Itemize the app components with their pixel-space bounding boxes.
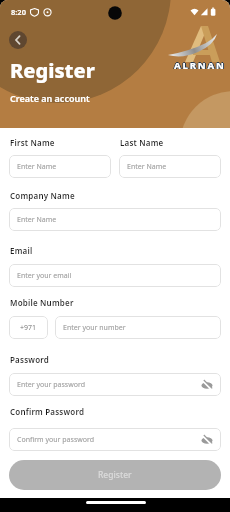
staticText: +971 <box>20 323 37 333</box>
staticText: Enter your password <box>17 380 85 390</box>
staticText: Register <box>10 57 95 84</box>
staticText: Email <box>10 245 33 256</box>
staticText: ALRNAN <box>174 58 226 71</box>
staticText: ALRNAN <box>174 59 226 72</box>
staticText: Company Name <box>10 190 75 201</box>
staticText: Mobile Number <box>10 297 74 308</box>
button[interactable] <box>9 31 27 49</box>
button[interactable]: Enter your password <box>9 373 221 396</box>
staticText: Enter Name <box>127 162 167 172</box>
button[interactable]: Register <box>9 460 221 490</box>
staticText: Create an account <box>10 92 90 104</box>
staticText: Confirm Password <box>10 406 85 417</box>
staticText: Last Name <box>120 137 164 148</box>
staticText: ALRNAN <box>173 59 225 72</box>
staticText: ALRNAN <box>175 59 227 72</box>
staticText: ALRNAN <box>175 59 227 72</box>
button[interactable]: Enter your number <box>55 316 221 339</box>
button[interactable]: Enter Name <box>9 208 221 231</box>
staticText: Enter your email <box>17 271 72 281</box>
staticText: Enter Name <box>17 215 57 225</box>
button[interactable]: Enter Name <box>119 155 221 178</box>
button[interactable]: Enter Name <box>9 155 111 178</box>
staticText: Register <box>98 469 132 481</box>
staticText: Enter your number <box>63 323 126 333</box>
staticText: Enter Name <box>17 162 57 172</box>
button[interactable]: Confirm your password <box>9 428 221 451</box>
staticText: ALRNAN <box>174 59 226 72</box>
staticText: First Name <box>10 137 55 148</box>
button[interactable]: Enter your email <box>9 264 221 287</box>
staticText: Password <box>10 354 49 365</box>
button[interactable]: +971 <box>9 316 48 339</box>
staticText: Confirm your password <box>17 435 95 445</box>
staticText: 8:20 <box>11 7 26 17</box>
